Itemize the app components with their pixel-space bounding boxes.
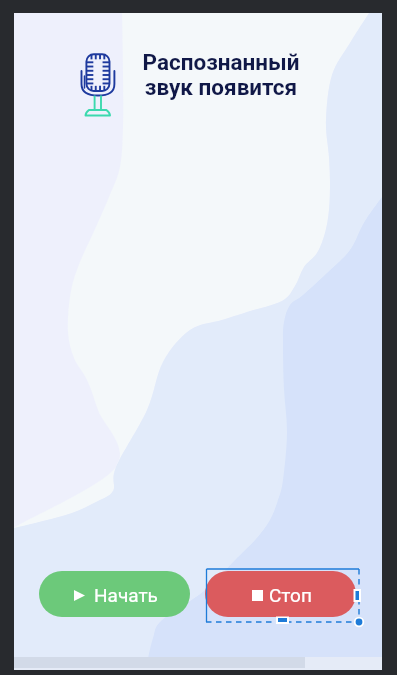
other: Microphone (79, 51, 117, 118)
staticText: Стоп (269, 584, 312, 606)
button[interactable]: Начать (39, 571, 190, 617)
staticText: Распознанный звук появится (131, 49, 311, 100)
staticText: Начать (94, 584, 158, 606)
other: Selected element (206, 569, 359, 622)
button[interactable]: Стоп (205, 571, 356, 617)
